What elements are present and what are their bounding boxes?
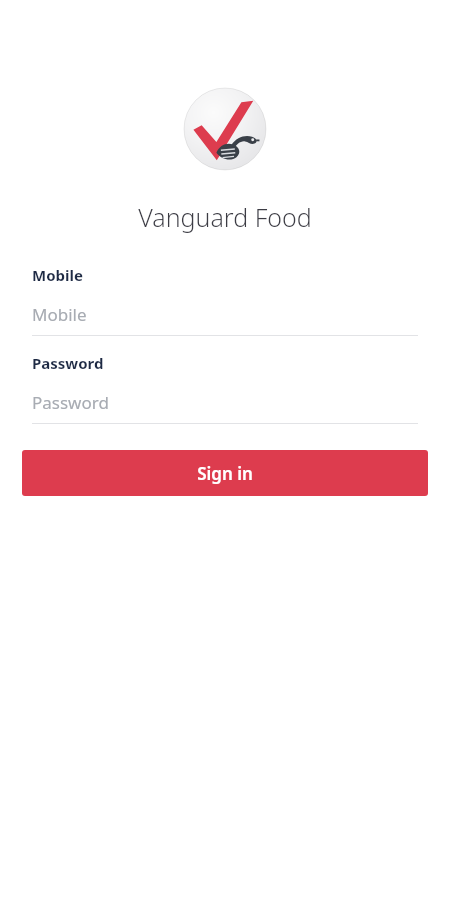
staticText: Sign in [197,462,253,485]
button[interactable]: Password [32,353,418,424]
staticText: Password [32,391,109,414]
staticText: Mobile [32,303,87,326]
button[interactable]: Mobile [32,265,418,336]
button[interactable]: Sign in [22,450,428,496]
staticText: Password [32,353,104,373]
staticText: Mobile [32,265,83,285]
staticText: Vanguard Food [0,200,450,234]
